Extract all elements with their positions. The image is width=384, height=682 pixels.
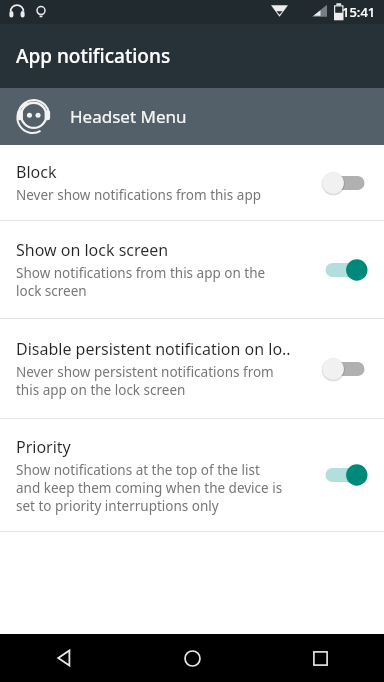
button[interactable]: Show on lock screen <box>0 221 384 318</box>
button[interactable]: Priority <box>320 458 370 492</box>
staticText: Disable persistent notification on lo.. <box>16 338 291 360</box>
staticText: Show on lock screen <box>16 239 169 261</box>
button[interactable]: Block <box>0 145 384 220</box>
staticText: Priority <box>16 436 71 458</box>
staticText: Show notifications from this app on the … <box>16 264 266 300</box>
staticText: Show notifications at the top of the lis… <box>16 461 283 515</box>
staticText: 15:41 <box>342 3 376 21</box>
button[interactable]: Back <box>0 634 128 682</box>
staticText: Headset Menu <box>70 105 187 128</box>
button[interactable]: Show on lock screen <box>320 253 370 287</box>
button[interactable]: Priority <box>0 419 384 531</box>
button[interactable]: Disable persistent notification on lo.. <box>320 352 370 386</box>
button[interactable]: Home <box>128 634 256 682</box>
button[interactable]: Headset Menu <box>0 88 384 145</box>
button[interactable]: Block <box>320 166 370 200</box>
staticText: Never show persistent notifications from… <box>16 363 274 399</box>
button[interactable]: Recent apps <box>256 634 384 682</box>
staticText: Never show notifications from this app <box>16 186 261 204</box>
staticText: Block <box>16 161 57 183</box>
button[interactable]: Disable persistent notification on lo.. <box>0 319 384 418</box>
staticText: App notifications <box>16 43 171 69</box>
